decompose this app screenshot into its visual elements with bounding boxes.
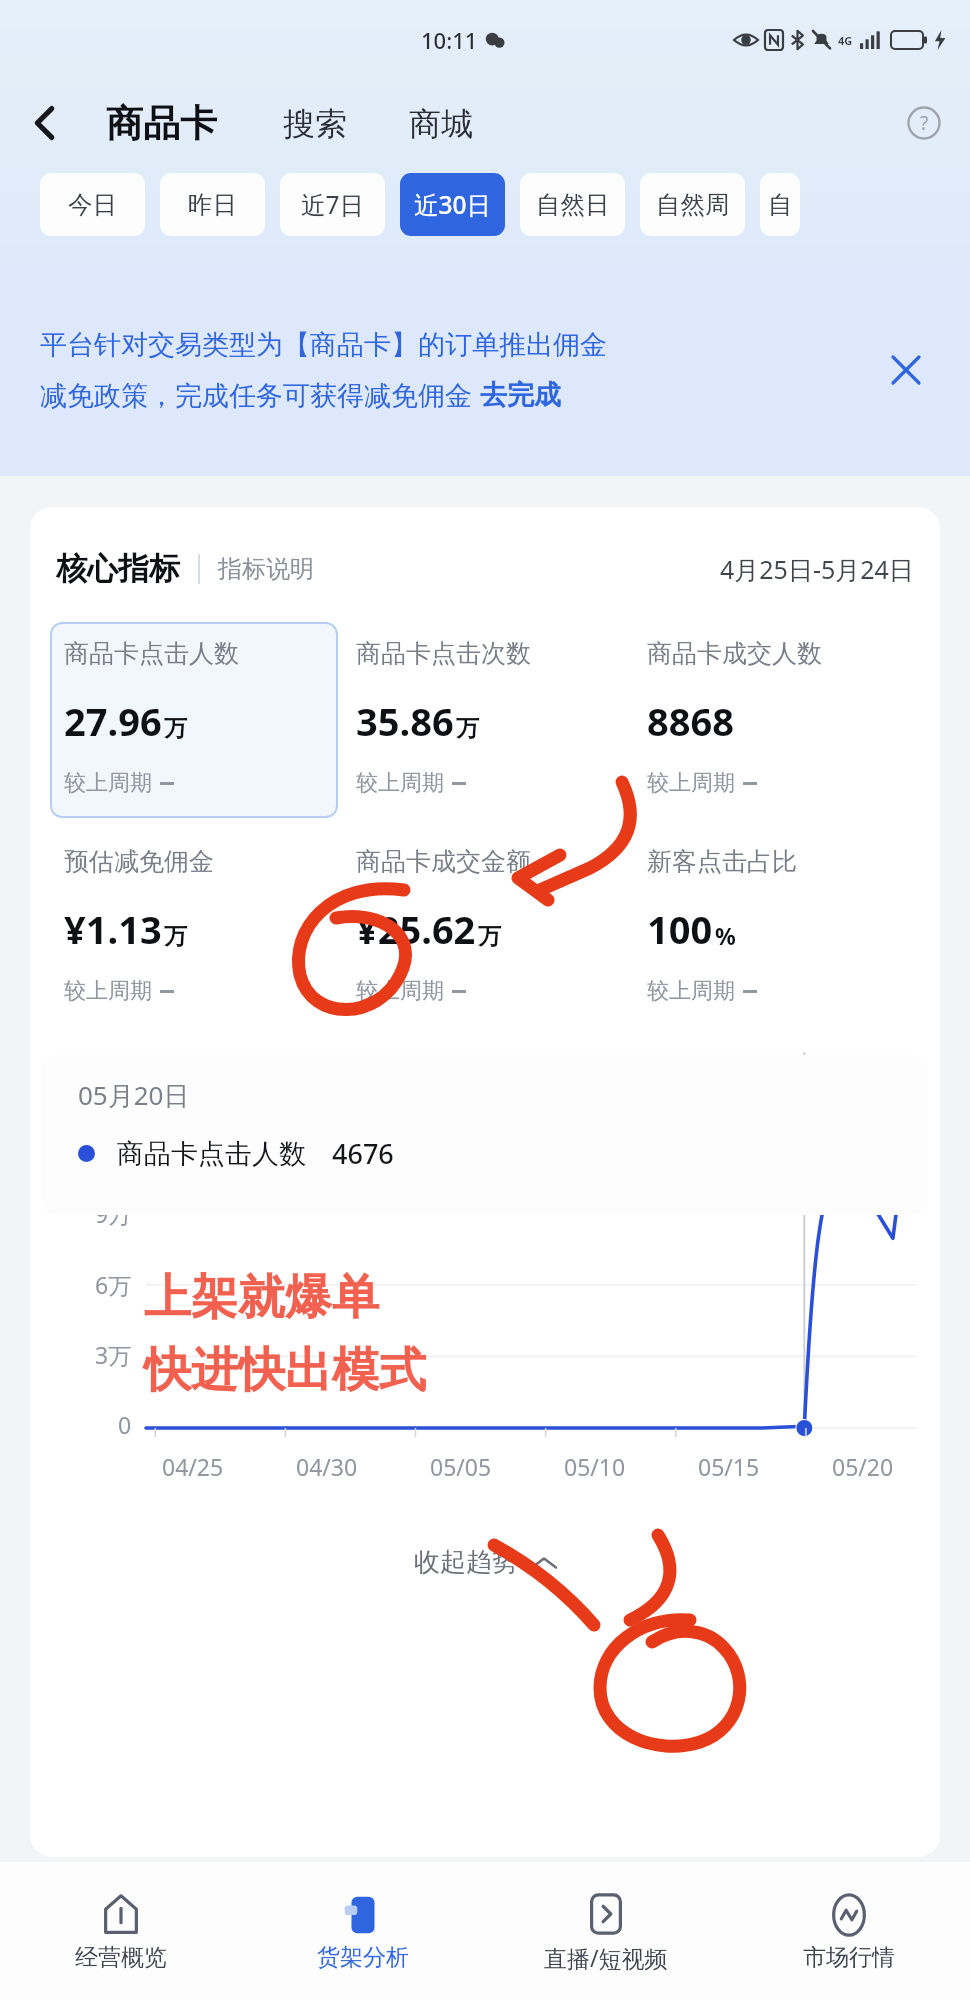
button[interactable]: 4月25日-5月24日: [720, 552, 914, 586]
button[interactable]: 指标说明: [218, 554, 314, 584]
staticText: 8868: [647, 695, 734, 747]
button[interactable]: 平台针对交易类型为【商品卡】的订单推出佣金: [0, 264, 970, 476]
button[interactable]: 直播/短视频: [484, 1862, 727, 2000]
staticText: 27.96: [64, 695, 162, 747]
staticText: 较上周期: [647, 977, 735, 1005]
staticText: 05/05: [430, 1451, 492, 1482]
staticText: 万: [164, 922, 187, 951]
staticText: 较上周期: [356, 977, 444, 1005]
button[interactable]: 自然日: [520, 173, 625, 236]
staticText: 较上周期: [64, 769, 152, 797]
staticText: 自: [768, 189, 793, 220]
staticText: 万: [456, 714, 479, 743]
button[interactable]: 自然周: [640, 173, 745, 236]
staticText: 05月20日: [78, 1077, 190, 1113]
button[interactable]: 商品卡成交金额: [342, 830, 629, 1026]
staticText: 12万: [82, 1128, 132, 1159]
staticText: 今日: [68, 189, 117, 220]
button[interactable]: 市场行情: [727, 1862, 970, 2000]
staticText: 商城: [409, 104, 473, 144]
staticText: 新客点击占比: [647, 846, 797, 877]
staticText: %: [715, 920, 736, 951]
staticText: 上架就爆单: [144, 1268, 379, 1327]
staticText: 商品卡点击人数: [117, 1137, 306, 1171]
staticText: 较上周期: [647, 769, 735, 797]
button[interactable]: 自: [760, 173, 800, 236]
staticText: 收起趋势: [414, 1546, 518, 1579]
staticText: 较上周期: [356, 769, 444, 797]
button[interactable]: Close banner: [878, 342, 934, 398]
staticText: ¥25.62: [356, 903, 476, 955]
staticText: 快进快出模式: [144, 1341, 426, 1400]
button[interactable]: 商城: [403, 98, 479, 150]
staticText: 05/15: [698, 1451, 760, 1482]
button[interactable]: 近7日: [280, 173, 385, 236]
staticText: 较上周期: [64, 977, 152, 1005]
staticText: 万: [478, 922, 501, 951]
button[interactable]: 昨日: [160, 173, 265, 236]
staticText: 平台针对交易类型为【商品卡】的订单推出佣金: [40, 328, 607, 362]
staticText: 市场行情: [803, 1943, 895, 1972]
button[interactable]: 搜索: [277, 98, 353, 150]
staticText: 04/25: [162, 1451, 224, 1482]
staticText: 04/30: [296, 1451, 358, 1482]
staticText: 直播/短视频: [544, 1942, 668, 1973]
staticText: 预估减免佣金: [64, 846, 214, 877]
staticText: ?: [920, 110, 929, 136]
staticText: 自然周: [656, 189, 730, 220]
button[interactable]: Help: [900, 99, 948, 147]
button[interactable]: 收起趋势: [396, 1536, 574, 1589]
staticText: 商品卡点击人数: [64, 638, 239, 669]
button[interactable]: Back: [18, 96, 72, 150]
staticText: 商品卡成交人数: [647, 638, 822, 669]
button[interactable]: 经营概览: [0, 1862, 242, 2000]
staticText: 近7日: [301, 188, 365, 221]
staticText: 商品卡成交金额: [356, 846, 531, 877]
button[interactable]: 预估减免佣金: [50, 830, 338, 1026]
staticText: 商品卡: [106, 100, 217, 147]
button[interactable]: 商品卡点击人数: [50, 622, 338, 818]
button[interactable]: 商品卡成交人数: [633, 622, 920, 818]
button[interactable]: 新客点击占比: [633, 830, 920, 1026]
staticText: 近30日: [414, 188, 492, 221]
staticText: 经营概览: [75, 1943, 167, 1972]
staticText: ¥1.13: [64, 903, 162, 955]
button[interactable]: 货架分析: [242, 1862, 484, 2000]
staticText: 搜索: [283, 104, 347, 144]
staticText: 4G: [838, 33, 853, 48]
staticText: 指标说明: [218, 554, 314, 584]
button[interactable]: 商品卡: [100, 94, 223, 153]
staticText: 05/20: [832, 1451, 894, 1482]
staticText: 6万: [95, 1269, 132, 1300]
staticText: 35.86: [356, 695, 454, 747]
button[interactable]: 近30日: [400, 173, 505, 236]
staticText: 去完成: [480, 378, 561, 412]
staticText: 05/10: [564, 1451, 626, 1482]
staticText: 3万: [95, 1339, 132, 1370]
staticText: 9万: [95, 1198, 132, 1229]
staticText: 自然日: [536, 189, 610, 220]
staticText: 减免政策，完成任务可获得减免佣金: [40, 376, 480, 413]
button[interactable]: 商品卡点击次数: [342, 622, 629, 818]
staticText: 4月25日-5月24日: [720, 552, 914, 586]
button[interactable]: 今日: [40, 173, 145, 236]
staticText: 15万: [82, 1058, 132, 1089]
staticText: 昨日: [188, 189, 237, 220]
staticText: 10:11: [421, 25, 478, 55]
staticText: 100: [647, 903, 713, 955]
staticText: 0: [118, 1409, 132, 1440]
staticText: 核心指标: [56, 549, 180, 588]
staticText: 货架分析: [317, 1943, 409, 1972]
staticText: 4676: [332, 1135, 394, 1172]
staticText: 商品卡点击次数: [356, 638, 531, 669]
staticText: 万: [164, 714, 187, 743]
